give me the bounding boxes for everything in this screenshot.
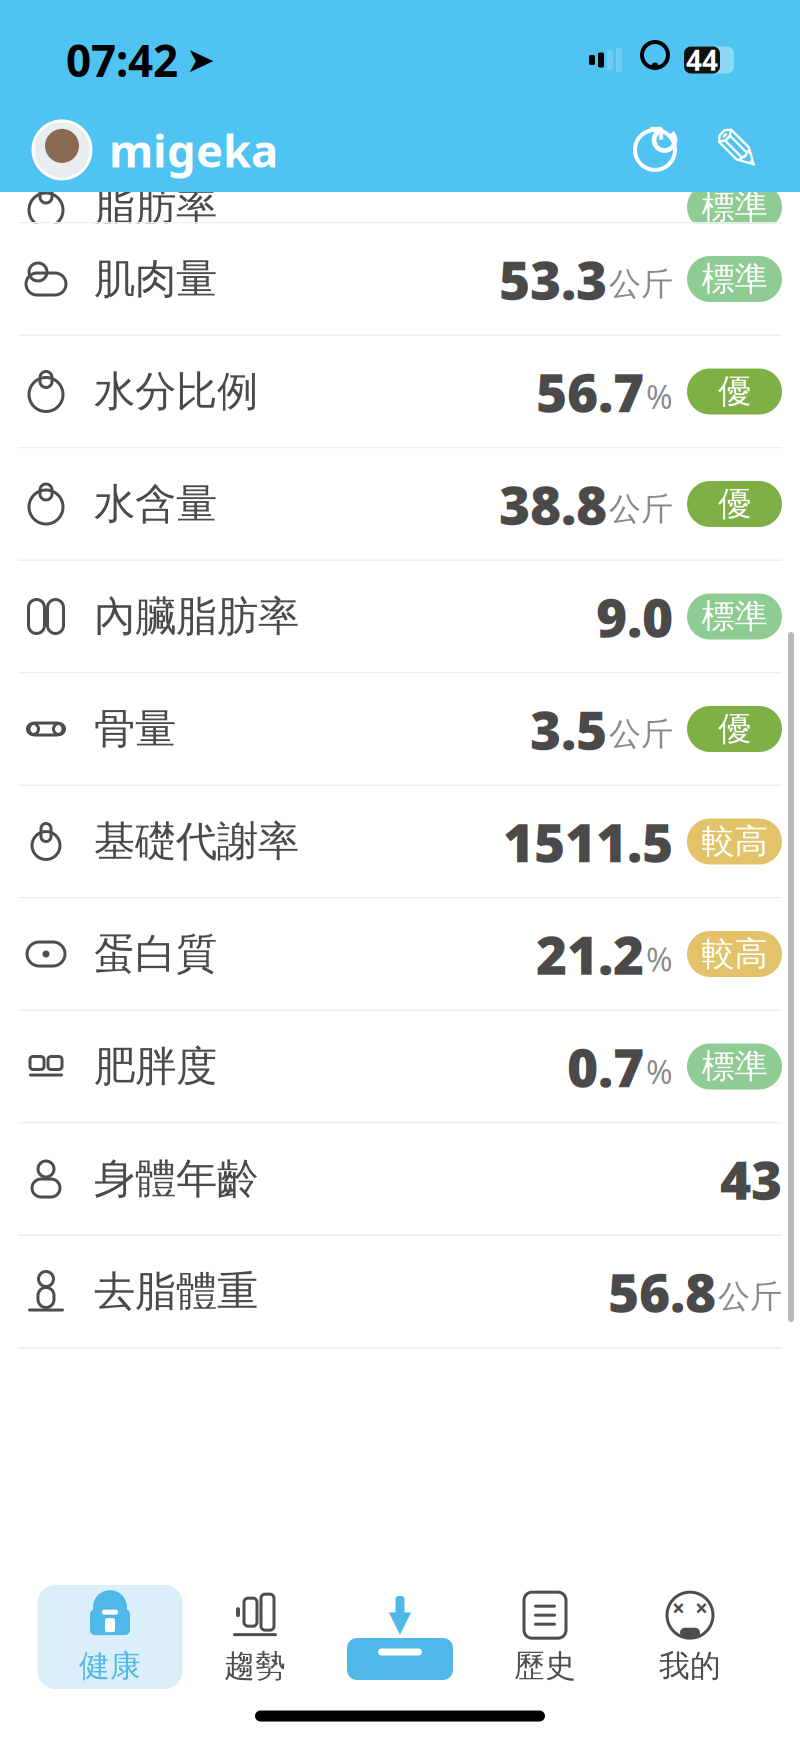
button[interactable]: 歷史: [472, 1585, 617, 1689]
staticText: 9.0: [596, 581, 673, 652]
staticText: 21.2: [536, 919, 644, 989]
button[interactable]: 內臟脂肪率: [0, 561, 800, 673]
staticText: 水含量: [94, 479, 217, 529]
staticText: ➤: [186, 40, 215, 80]
staticText: 蛋白質: [94, 929, 217, 979]
staticText: 較高: [701, 821, 767, 862]
staticText: 趨勢: [224, 1647, 286, 1685]
staticText: 基礎代謝率: [94, 816, 299, 867]
staticText: ▼: [388, 1604, 411, 1638]
staticText: 標準: [701, 596, 767, 637]
staticText: ×: [672, 1593, 685, 1623]
button[interactable]: 肥胖度: [0, 1011, 800, 1123]
staticText: 公斤: [718, 1277, 782, 1316]
button[interactable]: 水含量: [0, 448, 800, 561]
button[interactable]: Measure: [327, 1585, 472, 1689]
staticText: 優: [718, 708, 751, 749]
button[interactable]: 骨量: [0, 673, 800, 786]
staticText: ↻: [647, 118, 681, 164]
staticText: 44: [686, 41, 718, 79]
staticText: 公斤: [609, 264, 673, 304]
staticText: 健康: [79, 1647, 141, 1685]
button[interactable]: 健康: [37, 1585, 182, 1689]
staticText: %: [646, 1050, 673, 1093]
button[interactable]: 水分比例: [0, 336, 800, 448]
staticText: 1511.5: [503, 806, 673, 877]
staticText: 0.7: [567, 1031, 644, 1102]
staticText: 骨量: [94, 704, 176, 754]
staticText: 07:42: [66, 31, 178, 89]
button[interactable]: migeka: [33, 120, 278, 180]
staticText: 歷史: [514, 1647, 576, 1685]
staticText: 56.7: [536, 356, 644, 427]
button[interactable]: 去脂體重: [0, 1236, 800, 1348]
button[interactable]: Refresh: [625, 120, 685, 180]
staticText: 較高: [701, 933, 767, 974]
button[interactable]: 蛋白質: [0, 898, 800, 1011]
staticText: ×: [695, 1593, 708, 1623]
staticText: 43: [720, 1144, 782, 1214]
staticText: 內臟脂肪率: [94, 591, 299, 642]
staticText: 去脂體重: [94, 1266, 258, 1317]
staticText: %: [646, 375, 673, 418]
staticText: 脂肪率: [94, 182, 217, 232]
staticText: %: [646, 938, 673, 980]
staticText: 優: [718, 483, 751, 524]
button[interactable]: 趨勢: [182, 1585, 327, 1689]
staticText: migeka: [109, 120, 278, 180]
staticText: 標準: [701, 258, 767, 299]
staticText: 56.8: [608, 1256, 716, 1327]
button[interactable]: Edit: [707, 120, 767, 180]
staticText: ✎: [712, 117, 761, 183]
button[interactable]: ×: [617, 1585, 762, 1689]
staticText: 肌肉量: [94, 254, 217, 304]
staticText: 38.8: [499, 469, 607, 539]
staticText: 公斤: [609, 489, 673, 529]
staticText: 公斤: [609, 714, 673, 754]
staticText: 標準: [701, 1046, 767, 1087]
staticText: 水分比例: [94, 366, 258, 417]
staticText: 身體年齡: [94, 1154, 258, 1204]
staticText: 肥胖度: [94, 1041, 217, 1092]
staticText: 53.3: [499, 244, 607, 314]
staticText: 優: [718, 371, 751, 412]
button[interactable]: 身體年齡: [0, 1123, 800, 1236]
staticText: 3.5: [530, 694, 607, 764]
staticText: 我的: [659, 1647, 721, 1685]
staticText: 標準: [701, 186, 767, 227]
button[interactable]: 基礎代謝率: [0, 786, 800, 898]
button[interactable]: 肌肉量: [0, 223, 800, 336]
